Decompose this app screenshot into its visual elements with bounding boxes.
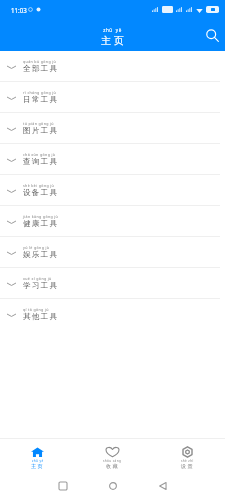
button[interactable]: qí tā gōng jù	[0, 299, 225, 330]
staticText: 全部工具	[23, 64, 59, 74]
staticText: shè bèi gōng jù	[23, 183, 55, 188]
staticText: 健康工具	[23, 219, 59, 229]
staticText: yú lè gōng jù	[23, 245, 50, 250]
button[interactable]: shōu cáng	[75, 439, 150, 475]
button[interactable]: yú lè gōng jù	[0, 237, 225, 268]
button[interactable]: jiàn kāng gōng jù	[0, 206, 225, 237]
button[interactable]: tú piàn gōng jù	[0, 113, 225, 144]
staticText: shè zhì	[181, 459, 194, 463]
staticText: zhǔ yè	[103, 27, 122, 33]
button[interactable]: shè bèi gōng jù	[0, 175, 225, 206]
staticText: 主页	[31, 463, 44, 470]
staticText: chá xún gōng jù	[23, 152, 56, 157]
staticText: 设置	[181, 463, 194, 470]
button[interactable]: Recents	[37, 475, 88, 497]
button[interactable]: zhǔ yè	[0, 439, 75, 475]
staticText: 日常工具	[23, 95, 59, 105]
staticText: xué xí gōng jù	[23, 276, 52, 281]
staticText: 其他工具	[23, 312, 59, 322]
staticText: 设备工具	[23, 188, 59, 198]
button[interactable]: Home	[88, 475, 138, 497]
button[interactable]: shè zhì	[150, 439, 225, 475]
staticText: 主 页	[101, 33, 124, 47]
button[interactable]: chá xún gōng jù	[0, 144, 225, 175]
staticText: 收藏	[106, 463, 119, 470]
button[interactable]: xué xí gōng jù	[0, 268, 225, 299]
staticText: 娱乐工具	[23, 250, 59, 260]
staticText: jiàn kāng gōng jù	[23, 214, 59, 219]
staticText: qí tā gōng jù	[23, 307, 49, 312]
staticText: zhǔ yè	[32, 459, 44, 463]
button[interactable]: rì cháng gōng jù	[0, 82, 225, 113]
staticText: shōu cáng	[103, 459, 122, 463]
staticText: rì cháng gōng jù	[23, 90, 57, 95]
button[interactable]: Search	[201, 24, 223, 46]
staticText: 查询工具	[23, 157, 59, 167]
staticText: 图片工具	[23, 126, 59, 136]
staticText: 学习工具	[23, 281, 59, 291]
staticText: quán bù gōng jù	[23, 59, 57, 64]
button[interactable]: Back	[138, 475, 188, 497]
staticText: tú piàn gōng jù	[23, 121, 54, 126]
button[interactable]: quán bù gōng jù	[0, 51, 225, 82]
staticText: 11:03	[11, 6, 27, 14]
